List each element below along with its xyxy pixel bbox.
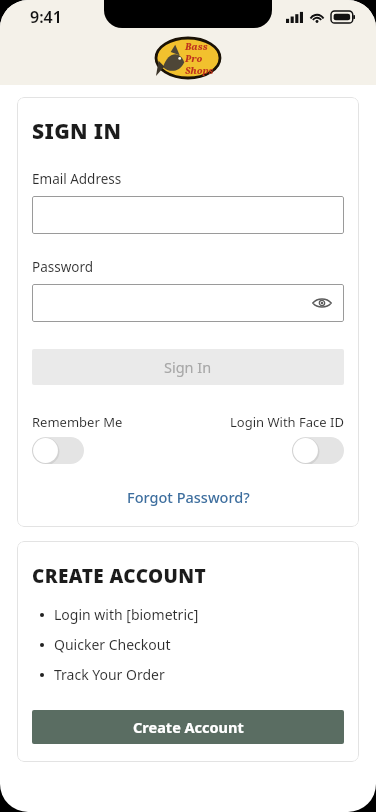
other: Bass Pro Shops bbox=[156, 38, 220, 78]
staticText: Quicker Checkout bbox=[54, 635, 171, 654]
staticText: Bass bbox=[185, 40, 208, 52]
button[interactable]: Create Account bbox=[32, 710, 344, 744]
staticText: Login With Face ID bbox=[230, 413, 344, 431]
staticText: CREATE ACCOUNT bbox=[32, 563, 207, 589]
staticText: Password bbox=[32, 258, 94, 276]
staticText: Remember Me bbox=[32, 413, 123, 431]
staticText: Create Account bbox=[133, 717, 244, 737]
staticText: 9:41 bbox=[30, 6, 62, 28]
button[interactable]: Show password bbox=[32, 284, 344, 322]
button[interactable]: Sign In bbox=[32, 349, 344, 385]
button[interactable]: Login With Face ID bbox=[188, 413, 344, 464]
button[interactable] bbox=[32, 196, 344, 234]
staticText: Shops bbox=[185, 64, 214, 76]
staticText: Login with [biometric] bbox=[54, 605, 199, 624]
staticText: Email Address bbox=[32, 170, 122, 188]
button[interactable]: Show password bbox=[310, 291, 334, 315]
staticText: Forgot Password? bbox=[127, 487, 250, 507]
staticText: Track Your Order bbox=[54, 665, 165, 684]
button[interactable]: Remember Me bbox=[32, 413, 188, 464]
staticText: Pro bbox=[185, 52, 203, 64]
button[interactable]: Forgot Password? bbox=[121, 484, 256, 510]
staticText: SIGN IN bbox=[32, 117, 122, 146]
staticText: Sign In bbox=[164, 357, 212, 377]
